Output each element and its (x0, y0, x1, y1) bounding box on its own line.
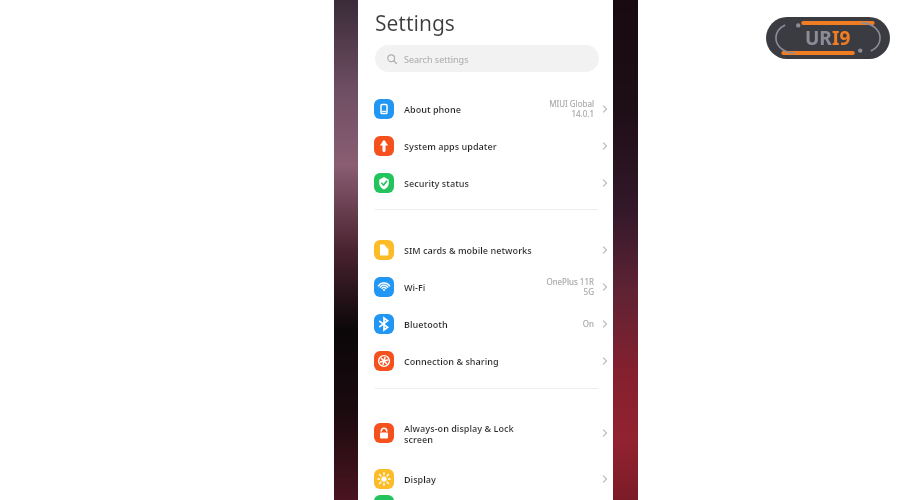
staticText: UR (805, 25, 832, 51)
staticText: OnePlus 11R 5G (538, 276, 594, 297)
button[interactable]: Search settings (375, 45, 599, 72)
staticText: Search settings (404, 53, 469, 65)
staticText: I9 (832, 25, 851, 51)
button[interactable]: Wi-Fi (368, 268, 606, 305)
staticText: About phone (404, 103, 554, 115)
button[interactable]: Bluetooth (368, 305, 606, 342)
button[interactable]: Always-on display & Lock screen (368, 410, 606, 456)
staticText: SIM cards & mobile networks (404, 244, 554, 256)
staticText: MIUI Global 14.0.1 (538, 98, 594, 119)
button[interactable]: Connection & sharing (368, 342, 606, 379)
staticText: Always-on display & Lock screen (404, 422, 554, 445)
button[interactable]: Display (368, 460, 606, 497)
staticText: Settings (375, 9, 455, 38)
staticText: Wi-Fi (404, 281, 554, 293)
staticText: Security status (404, 177, 554, 189)
staticText: Bluetooth (404, 318, 554, 330)
button[interactable]: Security status (368, 164, 606, 201)
staticText: On (538, 318, 594, 329)
staticText: Connection & sharing (404, 355, 554, 367)
staticText: Display (404, 473, 554, 485)
button[interactable]: System apps updater (368, 127, 606, 164)
other: UR19 logo (766, 17, 890, 59)
staticText: System apps updater (404, 140, 554, 152)
button[interactable]: About phone (368, 90, 606, 127)
button[interactable]: SIM cards & mobile networks (368, 231, 606, 268)
